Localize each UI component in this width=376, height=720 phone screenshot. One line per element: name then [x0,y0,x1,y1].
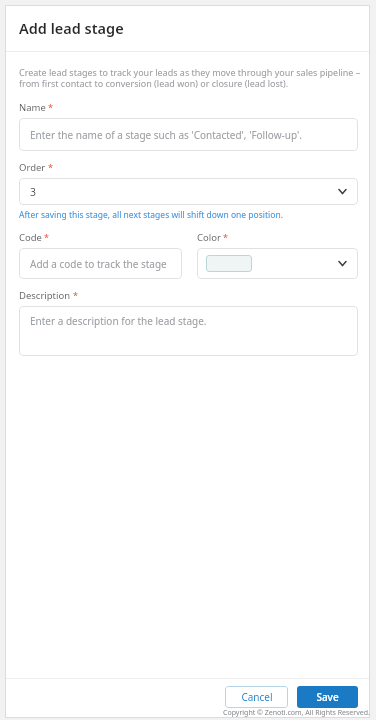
staticText: * [48,161,53,173]
staticText: Enter a description for the lead stage. [30,314,207,328]
staticText: Color [197,231,221,244]
staticText: Enter the name of a stage such as 'Conta… [30,128,302,142]
staticText: Add lead stage [19,18,124,38]
button[interactable]: Save [297,686,358,708]
staticText: Description [19,289,71,302]
staticText: 3 [30,185,37,199]
staticText: * [73,289,78,301]
button[interactable]: Enter the name of a stage such as 'Conta… [19,118,358,151]
staticText: * [48,101,53,113]
staticText: * [44,231,49,243]
staticText: Add a code to track the stage [30,257,167,271]
button[interactable] [197,248,358,279]
staticText: Create lead stages to track your leads a… [19,66,361,90]
button[interactable]: Enter a description for the lead stage. [19,306,358,356]
button[interactable]: Cancel [225,686,288,708]
staticText: Copyright © Zenoti.com, All Rights Reser… [223,708,370,718]
staticText: Code [19,231,42,244]
staticText: After saving this stage, all next stages… [19,209,283,221]
other: Copyright notice [223,708,370,718]
staticText: * [223,231,228,243]
staticText: Order [19,161,46,174]
button[interactable]: 3 [19,178,358,205]
button[interactable]: Add a code to track the stage [19,248,182,279]
staticText: Name [19,101,46,114]
staticText: Cancel [241,690,273,704]
staticText: Save [316,690,339,704]
